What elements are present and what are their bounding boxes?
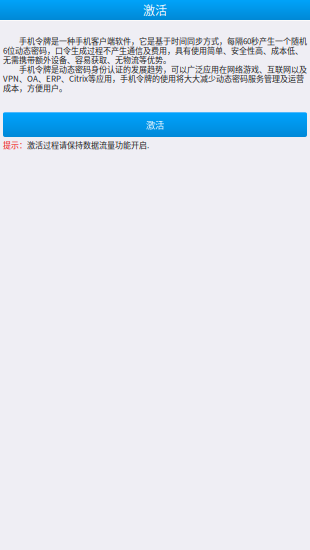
staticText: 手机令牌是一种手机客户端软件，它是基于时间同步方式，每隔60秒产生一个随机6位动…	[3, 35, 307, 65]
staticText: 激活过程请保持数据流量功能开启.	[27, 139, 149, 151]
staticText: 手机令牌是动态密码身份认证的发展趋势，可以广泛应用在网络游戏、互联网以及VPN、…	[3, 63, 307, 94]
staticText: 激活	[146, 118, 164, 131]
button[interactable]: 激活	[0, 111, 310, 138]
staticText: 激活	[143, 1, 167, 19]
staticText: 提示：	[3, 139, 27, 151]
